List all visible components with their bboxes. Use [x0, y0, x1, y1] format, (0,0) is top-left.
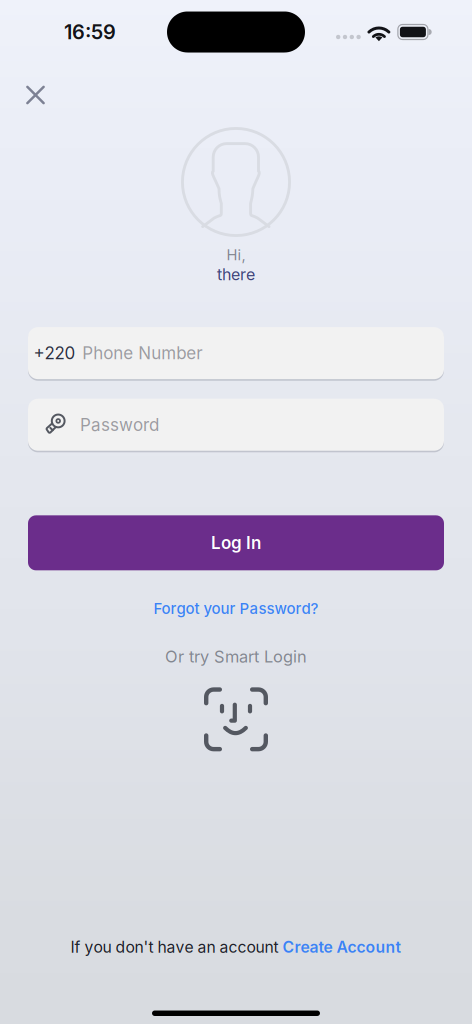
staticText: If you don't have an account	[70, 937, 282, 956]
button[interactable]: Face ID	[199, 682, 273, 756]
staticText: Hi,	[226, 246, 245, 264]
staticText: there	[217, 265, 255, 284]
staticText: Phone Number	[82, 343, 202, 363]
staticText: Forgot your Password?	[153, 599, 318, 617]
button[interactable]: Forgot your Password?	[141, 594, 330, 622]
staticText: +220	[33, 343, 75, 363]
button[interactable]: Create Account	[282, 937, 401, 956]
staticText: Or try Smart Login	[165, 646, 307, 666]
staticText: Log In	[211, 533, 261, 553]
button[interactable]: Log In	[0, 515, 472, 570]
button[interactable]: Close	[0, 54, 59, 114]
staticText: 16:59	[64, 20, 116, 44]
staticText: Create Account	[282, 937, 401, 956]
staticText: Password	[80, 414, 159, 435]
